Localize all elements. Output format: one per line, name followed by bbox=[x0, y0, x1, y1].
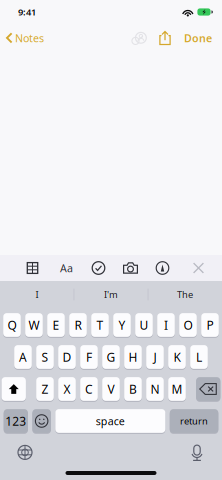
button[interactable]: X bbox=[58, 377, 76, 401]
button[interactable]: S bbox=[36, 345, 54, 369]
button[interactable]: Markup bbox=[149, 255, 176, 281]
button[interactable]: J bbox=[146, 345, 164, 369]
button[interactable]: Shift bbox=[2, 377, 26, 401]
button[interactable]: W bbox=[25, 313, 43, 337]
button[interactable]: Y bbox=[113, 313, 131, 337]
staticText: Done bbox=[184, 31, 212, 45]
button[interactable]: Table bbox=[19, 255, 46, 281]
staticText: A bbox=[19, 349, 27, 365]
button[interactable]: K bbox=[168, 345, 186, 369]
staticText: Aa bbox=[60, 261, 73, 275]
staticText: The bbox=[177, 288, 193, 301]
button[interactable]: return bbox=[170, 409, 218, 433]
staticText: 9:41 bbox=[18, 6, 36, 18]
staticText: W bbox=[28, 317, 39, 333]
staticText: 123 bbox=[5, 413, 26, 429]
staticText: Q bbox=[7, 317, 16, 333]
staticText: G bbox=[106, 349, 115, 365]
button[interactable]: M bbox=[168, 377, 186, 401]
staticText: C bbox=[85, 381, 93, 397]
staticText: F bbox=[86, 349, 92, 365]
staticText: K bbox=[173, 349, 180, 365]
button[interactable]: O bbox=[179, 313, 197, 337]
button[interactable]: Share bbox=[152, 23, 178, 53]
button[interactable]: Backspace bbox=[196, 377, 220, 401]
button[interactable]: F bbox=[80, 345, 98, 369]
staticText: L bbox=[196, 349, 202, 365]
staticText: O bbox=[183, 317, 192, 333]
staticText: T bbox=[96, 317, 103, 333]
button[interactable]: Q bbox=[3, 313, 21, 337]
button[interactable]: V bbox=[102, 377, 120, 401]
staticText: P bbox=[206, 317, 213, 333]
button[interactable]: E bbox=[47, 313, 65, 337]
staticText: Y bbox=[118, 317, 125, 333]
staticText: I bbox=[35, 288, 38, 301]
button[interactable]: Aa bbox=[53, 255, 80, 281]
staticText: R bbox=[74, 317, 81, 333]
staticText: H bbox=[128, 349, 137, 365]
staticText: B bbox=[129, 381, 137, 397]
button[interactable]: Next keyboard bbox=[10, 442, 40, 462]
button[interactable]: D bbox=[58, 345, 76, 369]
staticText: S bbox=[41, 349, 48, 365]
button[interactable]: B bbox=[124, 377, 142, 401]
button[interactable]: I bbox=[0, 281, 73, 308]
button[interactable]: U bbox=[135, 313, 153, 337]
button[interactable]: Dictation bbox=[182, 442, 212, 462]
button[interactable]: Emoji bbox=[32, 409, 51, 433]
button[interactable]: H bbox=[124, 345, 142, 369]
staticText: J bbox=[153, 349, 156, 365]
staticText: M bbox=[171, 381, 182, 397]
button[interactable]: Close bbox=[185, 255, 212, 281]
button[interactable]: T bbox=[91, 313, 109, 337]
staticText: D bbox=[62, 349, 71, 365]
staticText: space bbox=[96, 414, 125, 428]
staticText: Notes bbox=[15, 31, 44, 45]
button[interactable]: Z bbox=[36, 377, 54, 401]
button[interactable]: Collaborate bbox=[126, 23, 152, 53]
button[interactable]: Camera bbox=[117, 255, 144, 281]
button[interactable]: I bbox=[157, 313, 175, 337]
button[interactable]: The bbox=[148, 281, 222, 308]
staticText: Z bbox=[41, 381, 48, 397]
staticText: I bbox=[164, 317, 168, 333]
staticText: return bbox=[180, 415, 208, 427]
button[interactable]: Notes bbox=[0, 23, 44, 53]
button[interactable]: space bbox=[55, 409, 165, 433]
button[interactable]: 123 bbox=[4, 409, 28, 433]
staticText: N bbox=[150, 381, 159, 397]
staticText: I'm bbox=[104, 288, 118, 301]
button[interactable]: G bbox=[102, 345, 120, 369]
button[interactable]: P bbox=[201, 313, 219, 337]
button[interactable]: C bbox=[80, 377, 98, 401]
button[interactable]: Done bbox=[178, 23, 222, 53]
staticText: V bbox=[107, 381, 114, 397]
button[interactable]: L bbox=[190, 345, 208, 369]
button[interactable]: Checklist bbox=[85, 255, 112, 281]
staticText: E bbox=[52, 317, 59, 333]
button[interactable]: I'm bbox=[74, 281, 148, 308]
button[interactable]: R bbox=[69, 313, 87, 337]
button[interactable]: N bbox=[146, 377, 164, 401]
staticText: U bbox=[139, 317, 148, 333]
button[interactable]: A bbox=[14, 345, 32, 369]
staticText: X bbox=[63, 381, 70, 397]
